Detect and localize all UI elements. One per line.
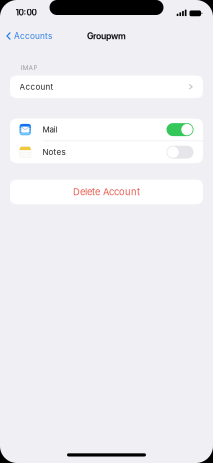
staticText: Account — [19, 82, 53, 92]
button[interactable]: Delete Account — [10, 180, 203, 204]
staticText: Notes — [42, 147, 65, 157]
staticText: IMAP — [20, 64, 37, 72]
button[interactable]: Account — [10, 75, 203, 98]
button[interactable]: Accounts — [0, 28, 57, 44]
button[interactable]: Notes — [10, 141, 203, 163]
staticText: Mail — [42, 125, 57, 134]
staticText: Delete Account — [73, 186, 140, 198]
button[interactable]: Mail — [10, 119, 203, 141]
staticText: Groupwm — [87, 31, 126, 41]
staticText: Accounts — [14, 31, 52, 41]
staticText: 10:00 — [15, 7, 36, 17]
